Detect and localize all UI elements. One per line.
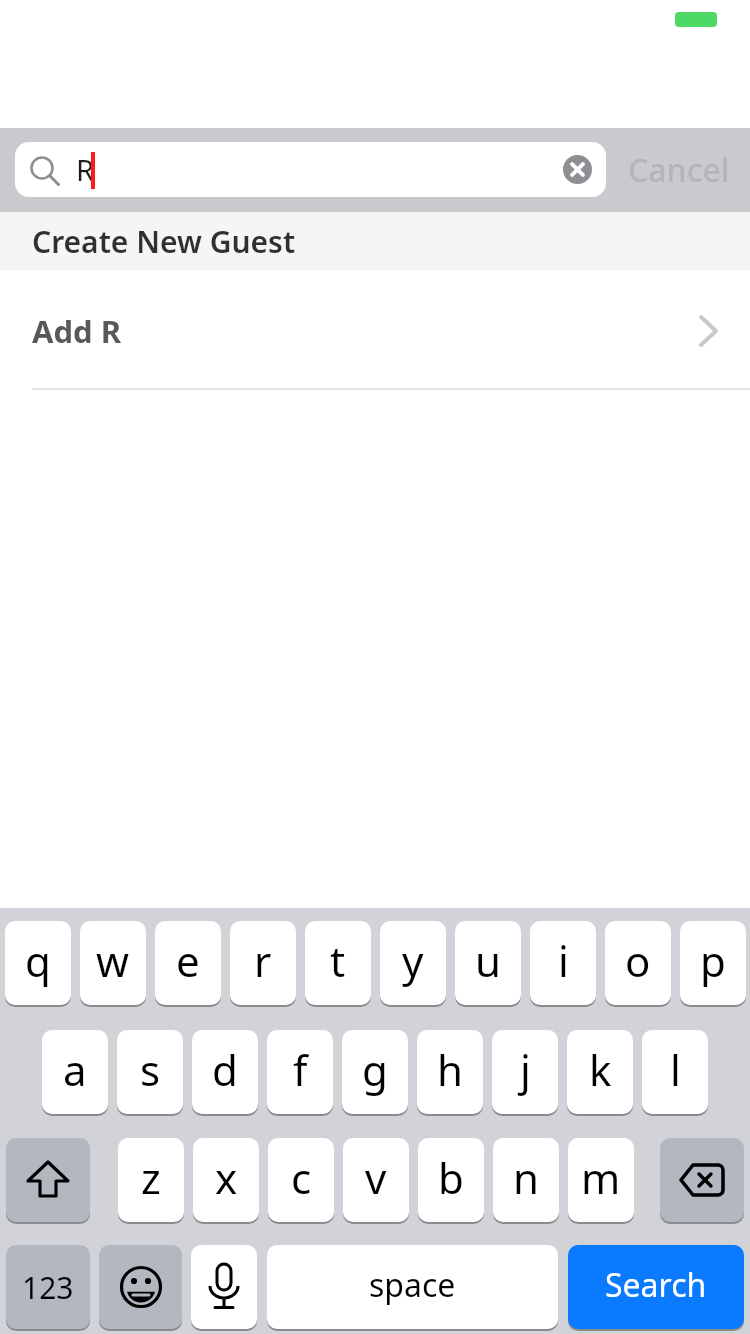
button[interactable]: h [417,1030,483,1116]
button[interactable]: s [117,1030,183,1116]
staticText: q [25,932,51,989]
button[interactable] [6,1138,90,1224]
button[interactable]: w [80,921,146,1007]
staticText: c [291,1149,312,1206]
button[interactable]: Add R [0,300,750,362]
staticText: v [365,1149,387,1206]
staticText: h [437,1041,463,1098]
button[interactable]: n [493,1138,559,1224]
button[interactable]: a [42,1030,108,1116]
staticText: d [212,1041,238,1098]
staticText: y [402,932,424,989]
staticText: s [140,1041,161,1098]
staticText: space [369,1263,456,1307]
staticText: p [700,932,726,989]
button[interactable] [191,1245,257,1331]
staticText: l [670,1041,681,1098]
staticText: 123 [22,1267,74,1308]
staticText: Search [605,1263,707,1307]
button[interactable]: k [567,1030,633,1116]
button[interactable]: m [568,1138,634,1224]
staticText: i [558,932,569,989]
staticText: t [330,932,346,989]
staticText: x [215,1149,238,1206]
button[interactable]: o [605,921,671,1007]
button[interactable]: l [642,1030,708,1116]
staticText: f [293,1041,308,1098]
button[interactable]: e [155,921,221,1007]
button[interactable]: space [267,1245,558,1331]
button[interactable] [99,1245,182,1331]
button[interactable]: u [455,921,521,1007]
button[interactable]: d [192,1030,258,1116]
staticText: b [438,1149,464,1206]
staticText: Cancel [628,148,730,192]
button[interactable]: c [268,1138,334,1224]
staticText: r [254,932,272,989]
button[interactable]: p [680,921,746,1007]
button[interactable]: x [193,1138,259,1224]
button[interactable]: f [267,1030,333,1116]
button[interactable]: j [492,1030,558,1116]
button[interactable]: b [418,1138,484,1224]
button[interactable]: y [380,921,446,1007]
button[interactable]: Cancel [628,148,730,192]
button[interactable]: z [118,1138,184,1224]
staticText: g [362,1041,388,1098]
button[interactable]: g [342,1030,408,1116]
staticText: k [589,1041,612,1098]
button[interactable]: i [530,921,596,1007]
staticText: m [581,1149,621,1206]
staticText: o [625,932,651,989]
button[interactable]: r [230,921,296,1007]
staticText: w [96,932,130,989]
button[interactable]: q [5,921,71,1007]
button[interactable]: Search [568,1245,744,1331]
staticText: Add R [32,310,122,352]
button[interactable]: v [343,1138,409,1224]
staticText: z [141,1149,161,1206]
staticText: u [475,932,501,989]
button[interactable]: R [15,142,606,197]
button[interactable]: 123 [6,1245,90,1331]
staticText: e [176,932,200,989]
button[interactable] [660,1138,744,1224]
staticText: j [520,1041,531,1098]
staticText: a [63,1041,87,1098]
button[interactable]: t [305,921,371,1007]
staticText: n [513,1149,539,1206]
staticText: Create New Guest [32,221,296,262]
button[interactable]: Create New Guest [0,212,750,270]
staticText: R [76,150,95,189]
